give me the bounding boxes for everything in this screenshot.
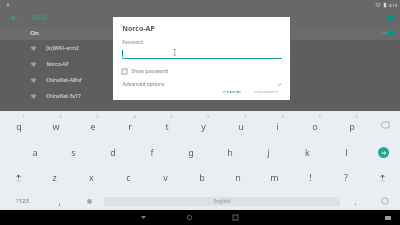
staticText: q xyxy=(16,120,22,132)
button[interactable]: h xyxy=(210,141,249,163)
staticText: ChinaNet-AWxf xyxy=(46,77,82,84)
button[interactable]: Voice input xyxy=(74,191,104,211)
staticText: 3 xyxy=(96,114,99,119)
button[interactable]: s xyxy=(54,141,93,163)
staticText: f xyxy=(150,146,154,158)
staticText: a xyxy=(32,146,38,158)
button[interactable]: w xyxy=(37,114,74,136)
button[interactable]: j xyxy=(249,141,288,163)
staticText: i xyxy=(276,120,279,132)
button[interactable]: q xyxy=(0,114,37,136)
staticText: s xyxy=(71,146,76,158)
staticText: x xyxy=(89,171,94,183)
staticText: g xyxy=(188,146,194,158)
button[interactable]: y xyxy=(185,114,222,136)
button[interactable]: Shift xyxy=(0,166,36,188)
staticText: 4 xyxy=(133,114,136,119)
button[interactable]: ! xyxy=(292,166,328,188)
button[interactable]: n xyxy=(220,166,256,188)
staticText: 1 xyxy=(22,114,25,119)
button[interactable]: Advanced options xyxy=(122,81,282,88)
button[interactable]: , xyxy=(44,191,74,211)
staticText: o xyxy=(312,120,318,132)
button[interactable]: Show password xyxy=(122,68,168,75)
staticText: CONNECT xyxy=(254,90,278,93)
button[interactable]: Change keyboard xyxy=(379,210,397,225)
button[interactable]: Wi-Fi toggle xyxy=(378,28,394,38)
button[interactable]: ChinaNet-5xT7 xyxy=(0,88,400,104)
staticText: Norco-AP xyxy=(46,61,69,68)
button[interactable]: [io]WiFi–arm2 xyxy=(0,40,400,56)
button[interactable]: English xyxy=(104,197,340,206)
button[interactable]: Navigate up xyxy=(7,11,21,25)
button[interactable]: p xyxy=(333,114,370,136)
staticText: n xyxy=(235,171,241,183)
staticText: k xyxy=(305,146,310,158)
staticText: ?123 xyxy=(16,197,29,205)
staticText: d xyxy=(110,146,116,158)
staticText: u xyxy=(238,120,244,132)
button[interactable]: More options xyxy=(384,12,396,24)
staticText: . xyxy=(354,196,357,207)
button[interactable]: m xyxy=(256,166,292,188)
staticText: 7 xyxy=(244,114,247,119)
staticText: Show password xyxy=(131,68,168,75)
button[interactable]: z xyxy=(36,166,73,188)
button[interactable]: g xyxy=(171,141,210,163)
button[interactable]: CONNECT xyxy=(250,88,282,95)
button[interactable]: Go xyxy=(366,141,400,163)
staticText: 2 xyxy=(59,114,62,119)
staticText: 3:13 xyxy=(389,3,397,8)
staticText: w xyxy=(52,120,60,132)
staticText: 0 xyxy=(355,114,358,119)
staticText: p xyxy=(349,120,355,132)
button[interactable]: k xyxy=(288,141,327,163)
staticText: Password xyxy=(122,39,143,45)
button[interactable]: CANCEL xyxy=(219,88,246,95)
button[interactable]: ? xyxy=(328,166,364,188)
staticText: h xyxy=(227,146,233,158)
staticText: Advanced options xyxy=(122,81,165,88)
button[interactable]: Backspace xyxy=(370,114,400,136)
button[interactable]: f xyxy=(132,141,171,163)
button[interactable]: i xyxy=(259,114,296,136)
button[interactable]: Shift xyxy=(364,166,400,188)
button[interactable]: ?123 xyxy=(0,191,44,211)
button[interactable]: e xyxy=(74,114,111,136)
staticText: r xyxy=(128,120,132,132)
button[interactable]: r xyxy=(111,114,148,136)
staticText: y xyxy=(201,120,206,132)
button[interactable]: v xyxy=(147,166,184,188)
button[interactable]: d xyxy=(93,141,132,163)
button[interactable]: Recent apps xyxy=(226,210,244,225)
button[interactable]: Home xyxy=(180,210,198,225)
staticText: ChinaNet-5xT7 xyxy=(46,93,81,100)
button[interactable]: Emoji xyxy=(370,191,400,211)
button[interactable]: x xyxy=(73,166,110,188)
button[interactable]: . xyxy=(340,191,370,211)
staticText: ! xyxy=(309,171,312,183)
button[interactable]: l xyxy=(327,141,366,163)
button[interactable]: Back xyxy=(134,210,152,225)
staticText: Norco-AP xyxy=(122,24,155,34)
staticText: 6 xyxy=(207,114,210,119)
button[interactable]: Norco-AP xyxy=(0,56,400,72)
button[interactable]: u xyxy=(222,114,259,136)
staticText: e xyxy=(90,120,96,132)
staticText: English xyxy=(213,198,231,205)
staticText: m xyxy=(270,171,279,183)
button[interactable]: t xyxy=(148,114,185,136)
button[interactable]: c xyxy=(110,166,147,188)
button[interactable]: b xyxy=(184,166,220,188)
staticText: , xyxy=(58,196,61,207)
staticText: v xyxy=(163,171,168,183)
staticText: 8 xyxy=(281,114,284,119)
staticText: l xyxy=(345,146,348,158)
button[interactable]: ChinaNet-AWxf xyxy=(0,72,400,88)
staticText: On xyxy=(30,29,39,37)
button[interactable]: o xyxy=(296,114,333,136)
button[interactable]: a xyxy=(16,141,54,163)
staticText: [io]WiFi–arm2 xyxy=(46,45,79,52)
staticText: t xyxy=(165,120,169,132)
staticText: b xyxy=(199,171,205,183)
